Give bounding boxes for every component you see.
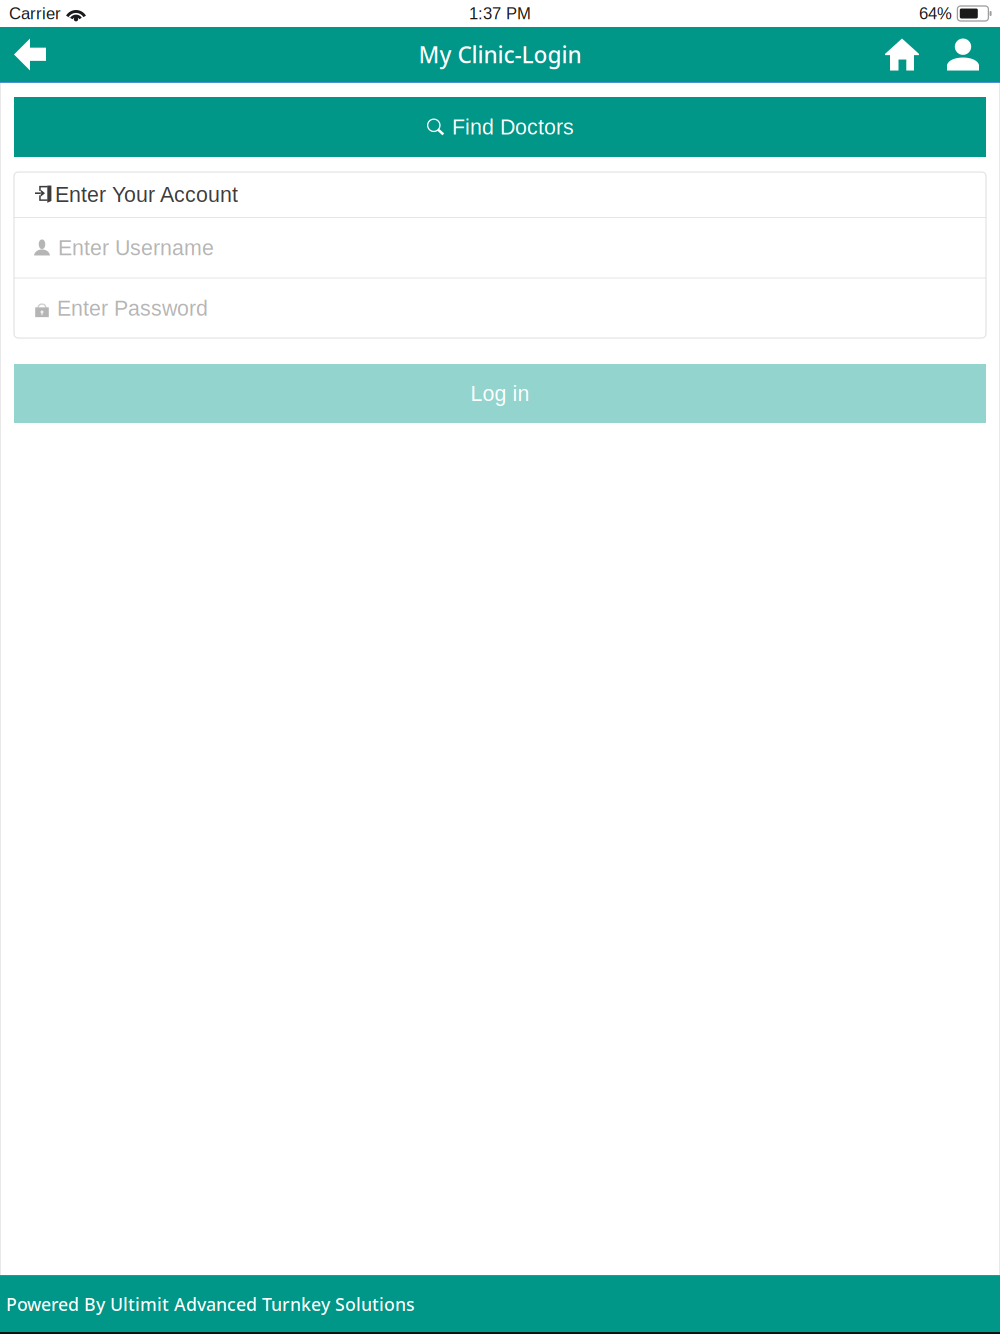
staticText: Enter Your Account [55, 183, 238, 206]
button[interactable]: Enter Password [14, 278, 986, 338]
button[interactable]: Find Doctors [14, 97, 986, 157]
button[interactable]: Enter Username [14, 218, 986, 277]
button[interactable]: Back [0, 27, 60, 82]
staticText: Find Doctors [452, 115, 574, 139]
button[interactable]: Profile [933, 27, 1000, 82]
staticText: Carrier [9, 4, 61, 23]
staticText: Enter Password [57, 296, 208, 320]
staticText: Enter Username [58, 236, 214, 260]
staticText: My Clinic-Login [418, 39, 581, 70]
staticText: 64% [919, 4, 952, 23]
staticText: Powered By Ultimit Advanced Turnkey Solu… [6, 1292, 415, 1316]
button[interactable]: Home [871, 27, 933, 82]
staticText: Log in [470, 382, 529, 405]
staticText: 1:37 PM [469, 4, 531, 23]
button[interactable]: Log in [14, 364, 986, 423]
